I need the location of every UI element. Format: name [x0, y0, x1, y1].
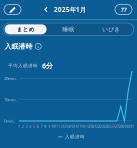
staticText: 1: [18, 124, 20, 129]
staticText: まとめ: [17, 26, 35, 33]
staticText: 23: [100, 124, 104, 129]
staticText: 平均入眠潜時: [8, 63, 38, 69]
staticText: 20: [89, 124, 93, 129]
staticText: 4: [29, 124, 31, 129]
staticText: 5: [33, 124, 35, 129]
staticText: 3: [25, 124, 27, 129]
staticText: 27: [115, 124, 119, 129]
staticText: 16: [73, 124, 77, 129]
staticText: 28: [119, 124, 123, 129]
button[interactable]: まとめ: [5, 24, 47, 34]
staticText: 2: [22, 124, 24, 129]
staticText: 6: [37, 124, 39, 129]
staticText: 12: [58, 124, 62, 129]
staticText: 15: [70, 124, 74, 129]
staticText: 13: [62, 124, 66, 129]
button[interactable]: 2025年1月: [44, 5, 86, 14]
staticText: 入眠潜時: [65, 134, 85, 140]
staticText: 29: [122, 124, 126, 129]
staticText: いびき: [102, 26, 120, 33]
staticText: 11: [55, 124, 59, 129]
staticText: 20min.: [4, 75, 17, 81]
staticText: 22: [96, 124, 100, 129]
staticText: 30: [126, 124, 130, 129]
staticText: 9: [48, 124, 50, 129]
staticText: 2025年1月: [54, 5, 86, 14]
staticText: 19: [85, 124, 89, 129]
staticText: 24: [104, 124, 108, 129]
staticText: 18: [81, 124, 85, 129]
staticText: 21: [92, 124, 96, 129]
staticText: 7: [41, 124, 43, 129]
button[interactable]: Sleep score: [115, 4, 132, 14]
staticText: 10min.: [4, 97, 17, 102]
staticText: 77: [120, 5, 126, 13]
button[interactable]: 睡眠: [48, 24, 89, 34]
staticText: 17: [77, 124, 81, 129]
staticText: 6分: [42, 61, 53, 70]
button[interactable]: Edit: [4, 4, 21, 14]
staticText: 睡眠: [62, 26, 74, 33]
staticText: 10: [51, 124, 55, 129]
staticText: 25: [107, 124, 111, 129]
staticText: 31: [130, 124, 134, 129]
staticText: 26: [111, 124, 115, 129]
staticText: 入眠潜時: [4, 42, 32, 51]
staticText: 14: [66, 124, 70, 129]
staticText: 8: [44, 124, 46, 129]
staticText: 0min.: [4, 118, 15, 124]
button[interactable]: いびき: [90, 24, 132, 34]
